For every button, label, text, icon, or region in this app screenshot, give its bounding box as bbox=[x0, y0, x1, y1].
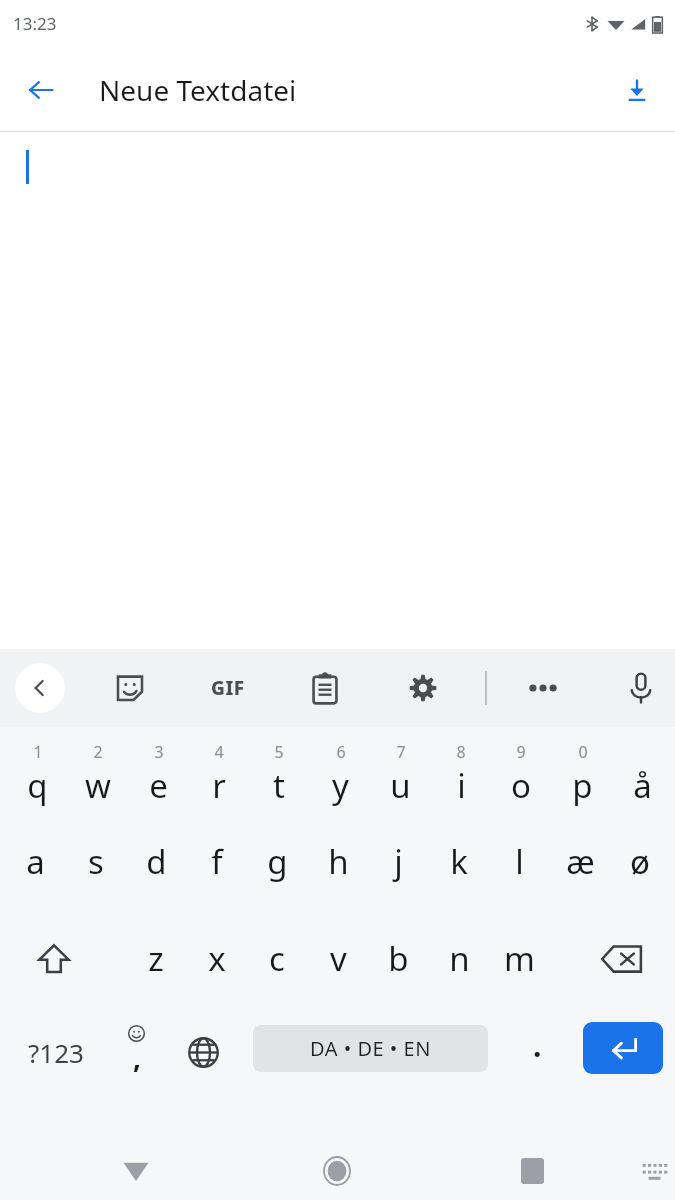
staticText: m bbox=[504, 936, 535, 981]
staticText: p bbox=[572, 763, 593, 808]
button[interactable]: j bbox=[368, 822, 428, 917]
button[interactable]: 1 bbox=[7, 729, 67, 820]
staticText: q bbox=[27, 763, 48, 808]
button[interactable]: Stickers bbox=[103, 663, 157, 713]
button[interactable]: . bbox=[508, 1023, 566, 1081]
staticText: , bbox=[133, 1038, 141, 1076]
staticText: DA • DE • EN bbox=[310, 1035, 431, 1062]
staticText: h bbox=[328, 839, 349, 884]
button[interactable]: 7 bbox=[370, 729, 430, 820]
staticText: c bbox=[269, 936, 285, 981]
staticText: ø bbox=[630, 839, 650, 884]
button[interactable]: Back bbox=[13, 62, 69, 118]
button[interactable]: k bbox=[429, 822, 489, 917]
staticText: y bbox=[332, 763, 349, 808]
staticText: 13:23 bbox=[13, 12, 57, 35]
staticText: k bbox=[450, 839, 468, 884]
staticText: i bbox=[457, 763, 466, 808]
staticText: 3 bbox=[154, 741, 164, 763]
button[interactable]: ?123 bbox=[8, 1023, 104, 1081]
button[interactable]: Home bbox=[311, 1145, 363, 1197]
staticText: w bbox=[85, 763, 111, 808]
button[interactable]: 2 bbox=[68, 729, 128, 820]
staticText: f bbox=[211, 839, 223, 884]
staticText: 2 bbox=[93, 741, 103, 763]
button[interactable]: m bbox=[489, 919, 549, 1011]
button[interactable]: Clipboard bbox=[298, 663, 352, 713]
button[interactable]: å bbox=[612, 729, 672, 820]
button[interactable]: x bbox=[187, 919, 247, 1011]
button[interactable]: ø bbox=[610, 822, 670, 917]
staticText: Neue Textdatei bbox=[99, 71, 297, 109]
staticText: å bbox=[633, 763, 652, 808]
button[interactable]: Enter bbox=[583, 1022, 663, 1074]
button[interactable]: Backspace bbox=[583, 919, 661, 1011]
button[interactable]: DA • DE • EN bbox=[253, 1025, 488, 1072]
button[interactable]: Comma, emoji bbox=[107, 1023, 165, 1081]
button[interactable]: c bbox=[247, 919, 307, 1011]
button[interactable]: Recents bbox=[506, 1145, 558, 1197]
staticText: g bbox=[267, 839, 288, 884]
staticText: d bbox=[146, 839, 167, 884]
staticText: ?123 bbox=[28, 1035, 84, 1070]
staticText: 7 bbox=[396, 741, 406, 763]
staticText: . bbox=[533, 1025, 542, 1066]
button[interactable]: 6 bbox=[310, 729, 370, 820]
staticText: GIF bbox=[211, 675, 245, 701]
staticText: b bbox=[388, 936, 409, 981]
staticText: j bbox=[394, 839, 403, 884]
button[interactable]: Voice input bbox=[614, 663, 668, 713]
staticText: 4 bbox=[214, 741, 224, 763]
staticText: v bbox=[330, 936, 347, 981]
staticText: t bbox=[273, 763, 285, 808]
staticText: r bbox=[212, 763, 226, 808]
button[interactable]: l bbox=[489, 822, 549, 917]
button[interactable]: Shift bbox=[15, 919, 93, 1011]
button[interactable]: d bbox=[126, 822, 186, 917]
staticText: 8 bbox=[456, 741, 466, 763]
staticText: 5 bbox=[274, 741, 284, 763]
button[interactable]: a bbox=[5, 822, 65, 917]
staticText: 6 bbox=[336, 741, 346, 763]
staticText: 0 bbox=[578, 741, 588, 763]
button[interactable]: Close toolbar bbox=[15, 663, 65, 713]
button[interactable]: 0 bbox=[552, 729, 612, 820]
staticText: s bbox=[88, 839, 104, 884]
staticText: l bbox=[515, 839, 524, 884]
button[interactable]: b bbox=[368, 919, 428, 1011]
staticText: a bbox=[26, 839, 45, 884]
staticText: 9 bbox=[516, 741, 526, 763]
staticText: x bbox=[208, 936, 226, 981]
button[interactable]: Switch language bbox=[173, 1023, 233, 1081]
button[interactable]: n bbox=[429, 919, 489, 1011]
button[interactable]: v bbox=[308, 919, 368, 1011]
button[interactable]: Settings bbox=[396, 663, 450, 713]
staticText: u bbox=[390, 763, 411, 808]
button[interactable]: æ bbox=[550, 822, 610, 917]
button[interactable]: s bbox=[66, 822, 126, 917]
button[interactable]: 5 bbox=[249, 729, 309, 820]
button[interactable]: Download bbox=[611, 64, 663, 116]
staticText: n bbox=[449, 936, 470, 981]
button[interactable]: 8 bbox=[431, 729, 491, 820]
button[interactable]: 3 bbox=[128, 729, 188, 820]
staticText: e bbox=[149, 763, 168, 808]
staticText: o bbox=[511, 763, 531, 808]
button[interactable]: GIF bbox=[199, 663, 257, 713]
button[interactable]: z bbox=[126, 919, 186, 1011]
staticText: æ bbox=[566, 839, 595, 884]
staticText: z bbox=[148, 936, 164, 981]
button[interactable]: g bbox=[247, 822, 307, 917]
button[interactable]: f bbox=[187, 822, 247, 917]
button[interactable]: Change keyboard bbox=[633, 1149, 675, 1193]
button[interactable]: 4 bbox=[189, 729, 249, 820]
button[interactable]: h bbox=[308, 822, 368, 917]
button[interactable]: Back bbox=[110, 1145, 162, 1197]
button[interactable]: More options bbox=[516, 663, 570, 713]
button[interactable]: 9 bbox=[491, 729, 551, 820]
staticText: 1 bbox=[33, 741, 43, 763]
